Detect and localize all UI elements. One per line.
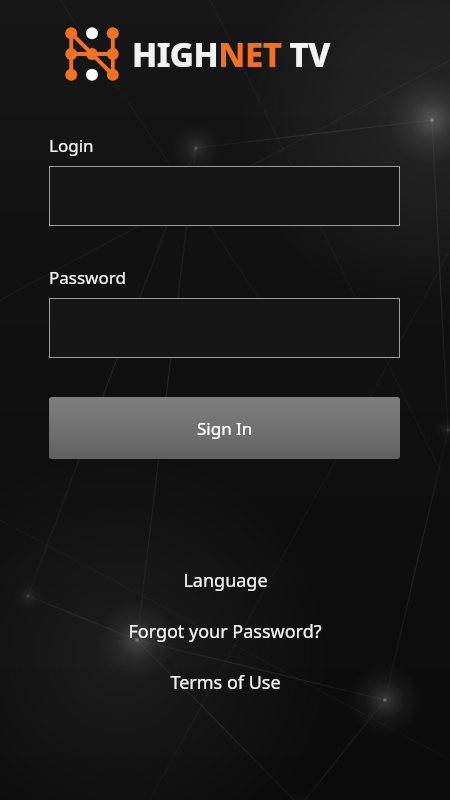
button[interactable]: Language (0, 567, 450, 593)
button[interactable]: Text input field (49, 298, 400, 358)
staticText: Forgot your Password? (128, 619, 322, 644)
button[interactable]: Text input field (49, 166, 400, 226)
staticText: Language (183, 568, 268, 593)
staticText: Password (49, 266, 126, 289)
staticText: HIGHNET TV (132, 32, 330, 77)
button[interactable]: Sign In (49, 397, 400, 459)
button[interactable]: Forgot your Password? (0, 618, 450, 644)
staticText: Login (49, 134, 94, 157)
staticText: Terms of Use (170, 670, 281, 695)
button[interactable]: Terms of Use (0, 669, 450, 695)
staticText: Sign In (197, 417, 253, 440)
